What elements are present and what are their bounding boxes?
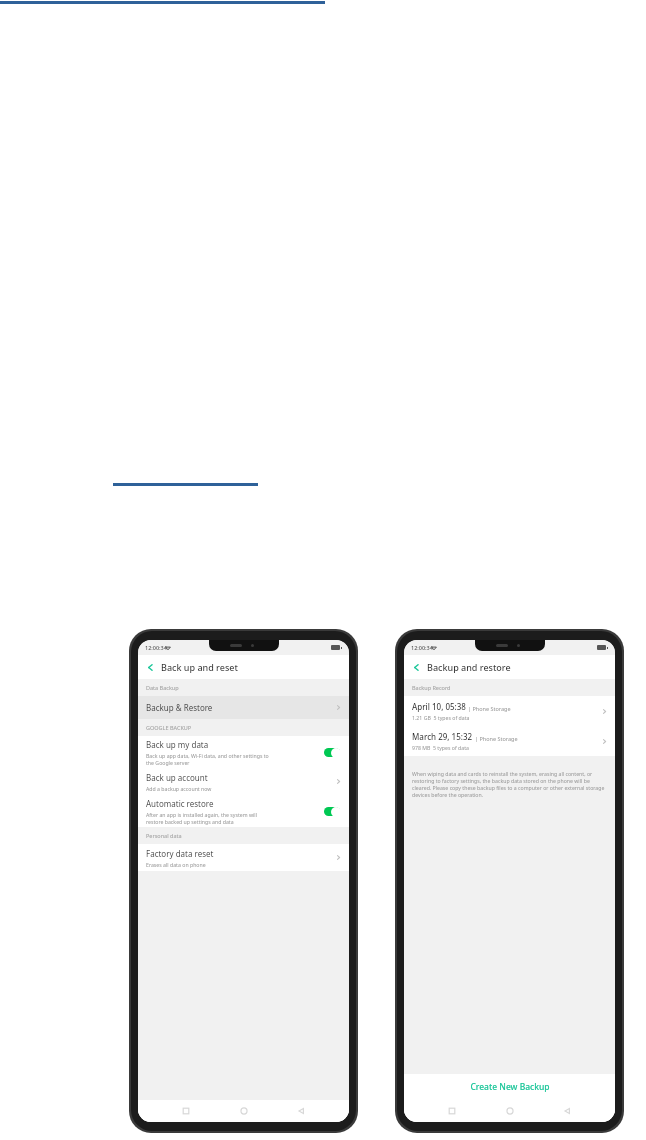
staticText: Erases all data on phone [146,861,206,868]
staticText: Backup and restore [427,661,511,673]
button[interactable]: Back [557,1101,577,1121]
button[interactable]: Create New Backup [404,1074,615,1100]
staticText: 12:00:34 [145,644,167,651]
staticText: Personal data [146,832,182,839]
staticText: Data Backup [146,684,179,691]
button[interactable]: April 10, 05:38 [404,696,615,726]
button[interactable]: Back [408,659,424,675]
button[interactable]: Back up account [138,768,349,795]
staticText: Add a backup account now [146,785,212,792]
button[interactable]: Home [500,1101,520,1121]
staticText: GOOGLE BACKUP [146,724,192,731]
staticText: Backup & Restore [146,702,213,713]
button[interactable]: Back [142,659,158,675]
button[interactable]: Recents [176,1101,196,1121]
staticText: April 10, 05:38 [412,701,466,712]
button[interactable]: Back up my data [138,736,349,768]
staticText: Create New Backup [470,1081,550,1093]
staticText: the Google server [146,759,190,766]
button[interactable]: Home [234,1101,254,1121]
staticText: Backup Record [412,684,451,691]
staticText: | Phone Storage [468,705,511,712]
staticText: When wiping data and cards to reinstall … [412,770,607,798]
button[interactable]: Recents [442,1101,462,1121]
staticText: March 29, 15:32 [412,731,473,742]
staticText: Factory data reset [146,848,214,859]
staticText: Back up and reset [161,661,238,673]
staticText: restore backed up settings and data [146,818,234,825]
button[interactable]: March 29, 15:32 [404,726,615,756]
staticText: After an app is installed again, the sys… [146,811,257,818]
staticText: 1.21 GB 5 types of data [412,714,470,721]
staticText: Automatic restore [146,798,214,809]
staticText: Back up account [146,772,208,783]
button[interactable]: Back [291,1101,311,1121]
button[interactable]: Automatic restore [138,795,349,827]
staticText: | Phone Storage [475,735,518,742]
button[interactable]: Backup & Restore [138,696,349,719]
staticText: 978 MB 5 types of data [412,744,469,751]
staticText: Back up my data [146,739,209,750]
staticText: 12:00:34 [411,644,433,651]
button[interactable]: Factory data reset [138,844,349,871]
staticText: Back up app data, Wi-Fi data, and other … [146,752,269,759]
